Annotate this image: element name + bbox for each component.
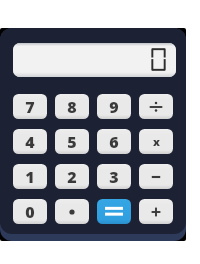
staticText: 4: [25, 131, 35, 153]
button[interactable]: Equals: [97, 199, 131, 224]
staticText: 0: [25, 201, 35, 223]
staticText: 5: [67, 131, 77, 153]
button[interactable]: 8: [55, 94, 89, 119]
button[interactable]: 3: [97, 164, 131, 189]
staticText: 9: [109, 96, 119, 118]
button[interactable]: Add: [139, 199, 173, 224]
button[interactable]: 5: [55, 129, 89, 154]
button[interactable]: Result display: 0: [13, 43, 176, 77]
button[interactable]: Divide: [139, 94, 173, 119]
button[interactable]: Decimal point: [55, 199, 89, 224]
staticText: 6: [109, 131, 119, 153]
button[interactable]: Subtract: [139, 164, 173, 189]
staticText: 3: [109, 166, 119, 188]
button[interactable]: 9: [97, 94, 131, 119]
staticText: 1: [25, 166, 35, 188]
button[interactable]: 7: [13, 94, 47, 119]
staticText: 7: [25, 96, 35, 118]
staticText: 8: [67, 96, 77, 118]
button[interactable]: 4: [13, 129, 47, 154]
button[interactable]: 0: [13, 199, 47, 224]
button[interactable]: 1: [13, 164, 47, 189]
button[interactable]: Multiply: [139, 129, 173, 154]
staticText: x: [153, 134, 160, 149]
button[interactable]: 6: [97, 129, 131, 154]
button[interactable]: 2: [55, 164, 89, 189]
staticText: 2: [67, 166, 77, 188]
